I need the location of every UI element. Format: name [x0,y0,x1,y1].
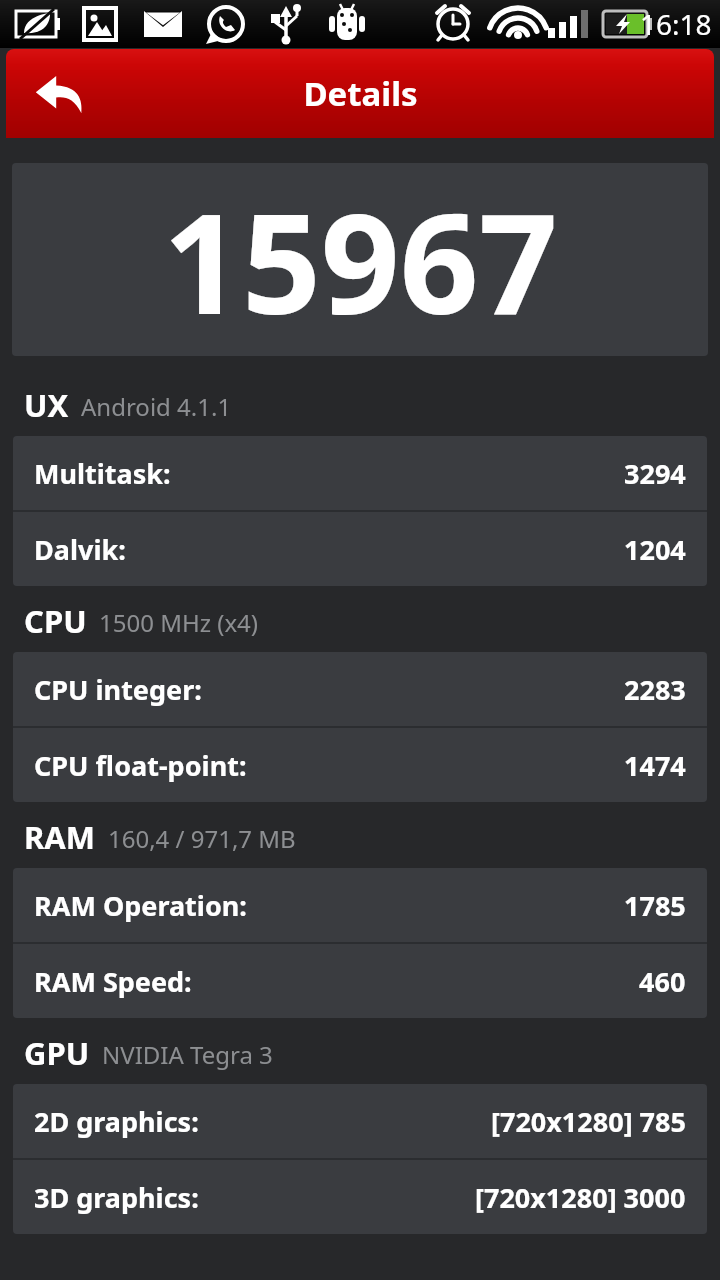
staticText: 1204 [624,531,686,568]
button[interactable]: 3D graphics: [13,1160,707,1234]
staticText: Dalvik: [34,531,126,568]
staticText: 3D graphics: [34,1179,199,1216]
staticText: Details [303,71,418,116]
staticText: 1785 [624,887,686,924]
staticText: Android 4.1.1 [81,390,232,423]
staticText: 1474 [624,747,686,784]
staticText: 1500 MHz (x4) [99,606,259,639]
button[interactable]: RAM Operation: [13,868,707,942]
button[interactable]: 2D graphics: [13,1084,707,1158]
staticText: UX [24,384,69,426]
staticText: Multitask: [34,455,171,492]
staticText: CPU float-point: [34,747,247,784]
button[interactable]: RAM Speed: [13,944,707,1018]
staticText: [720x1280] 3000 [475,1179,686,1216]
staticText: 3294 [624,455,686,492]
staticText: 160,4 / 971,7 MB [108,822,296,855]
staticText: 2D graphics: [34,1103,199,1140]
staticText: CPU [24,600,87,642]
staticText: GPU [24,1032,90,1074]
staticText: 16:18 [640,5,712,43]
button[interactable]: Back [6,49,116,138]
staticText: CPU integer: [34,671,202,708]
staticText: 460 [639,963,686,1000]
staticText: 2283 [624,671,686,708]
staticText: [720x1280] 785 [491,1103,686,1140]
button[interactable]: CPU integer: [13,652,707,726]
staticText: RAM [24,816,96,858]
button[interactable]: CPU float-point: [13,728,707,802]
staticText: 15967 [163,166,558,354]
staticText: RAM Operation: [34,887,247,924]
button[interactable]: Dalvik: [13,512,707,586]
button[interactable]: Multitask: [13,436,707,510]
staticText: NVIDIA Tegra 3 [102,1038,273,1071]
button[interactable]: 15967 [12,163,708,356]
staticText: RAM Speed: [34,963,192,1000]
